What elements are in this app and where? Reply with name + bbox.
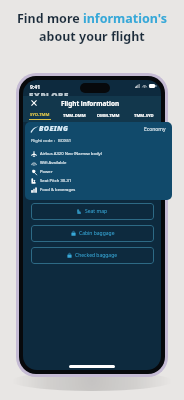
staticText: Power <box>40 169 53 175</box>
staticText: Economy <box>144 126 166 133</box>
button[interactable]: Seat map <box>31 203 154 220</box>
staticText: Checked baggage <box>75 252 118 259</box>
staticText: Flight code : BOX61 <box>31 138 72 144</box>
staticText: Food & beverages <box>40 187 76 193</box>
staticText: Seat map <box>85 208 108 215</box>
staticText: TMM-SYD <box>134 113 154 119</box>
staticText: information's <box>83 10 167 27</box>
staticText: Airbus A320 Neo (Narrow body) <box>40 151 102 157</box>
staticText: Seat Pitch 30-31 <box>40 178 72 184</box>
staticText: Wifi Available <box>40 160 67 166</box>
staticText: SYD-TMM <box>30 112 50 118</box>
staticText: EXPLORE <box>29 90 70 101</box>
button[interactable]: Cabin baggage <box>31 225 154 242</box>
button[interactable]: Close <box>30 99 38 107</box>
button[interactable]: DMM-TMM <box>91 110 126 122</box>
staticText: DMM-TMM <box>97 113 120 119</box>
staticText: 9:41 <box>30 84 40 91</box>
staticText: BOEING <box>39 124 69 134</box>
staticText: TMM-DMM <box>63 113 86 119</box>
button[interactable]: Checked baggage <box>31 247 154 264</box>
button[interactable]: TMM-DMM <box>57 110 91 122</box>
staticText: Flight information <box>38 99 142 108</box>
button[interactable]: TMM-SYD <box>126 110 161 122</box>
button[interactable]: SYD-TMM <box>23 110 57 122</box>
staticText: Cabin baggage <box>79 230 115 237</box>
staticText: about your flight <box>39 28 145 45</box>
staticText: Find more <box>17 10 83 27</box>
